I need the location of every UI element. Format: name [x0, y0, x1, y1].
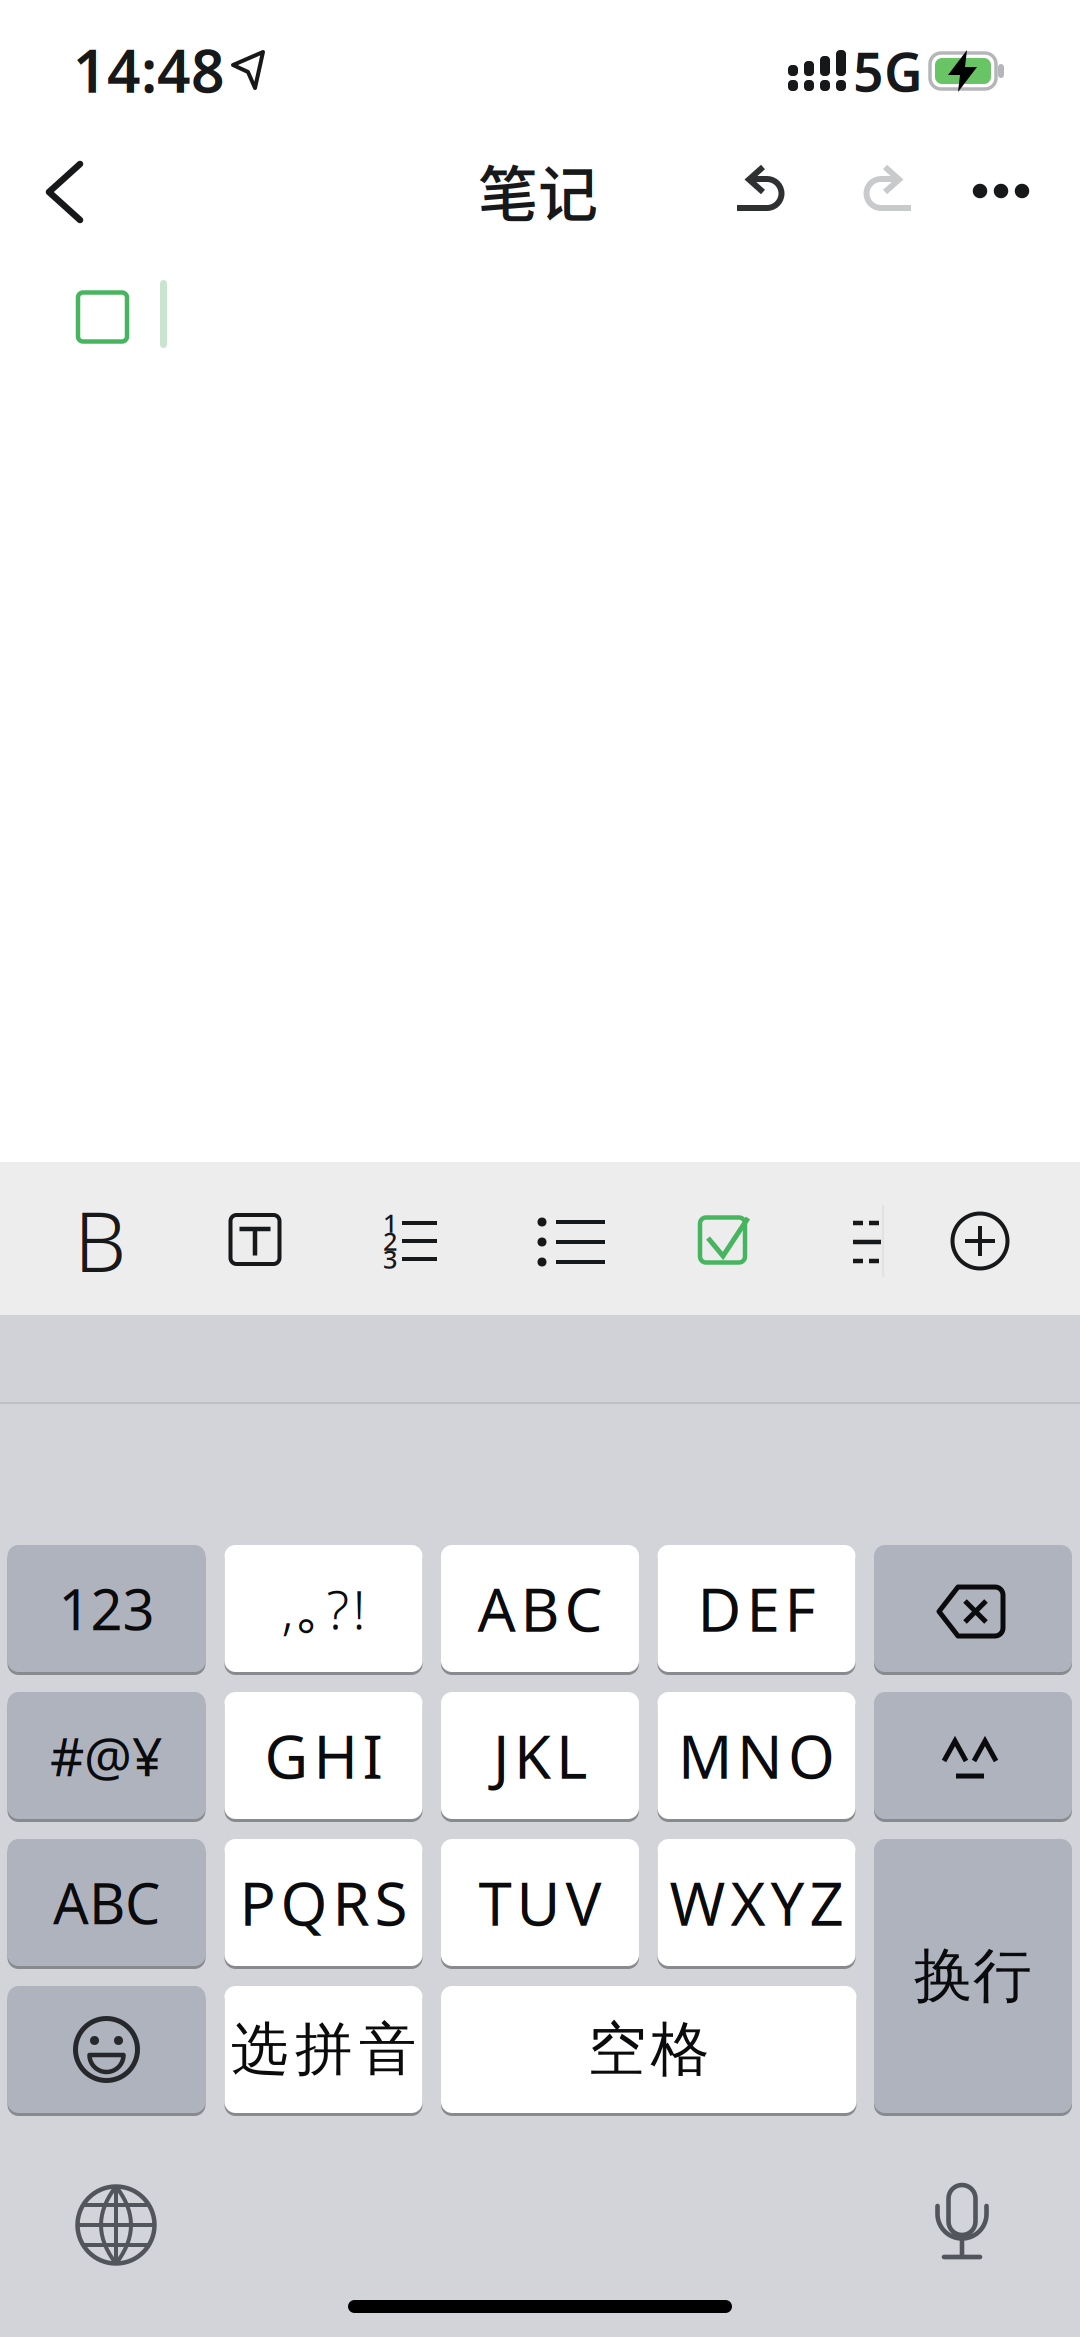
staticText: ABC [53, 1865, 160, 1940]
button[interactable]: 换行 [874, 1839, 1072, 2113]
staticText: MNO [678, 1716, 835, 1795]
staticText: #@¥ [50, 1720, 163, 1791]
button[interactable]: Text style [220, 1184, 290, 1294]
button[interactable]: JKL [441, 1692, 639, 1819]
staticText: 2 [383, 1224, 397, 1258]
staticText: PQRS [239, 1863, 407, 1942]
button[interactable]: Insert [945, 1186, 1015, 1296]
button[interactable]: ABC [441, 1545, 639, 1672]
staticText: WXYZ [669, 1863, 843, 1942]
button[interactable]: Numbered list [366, 1186, 456, 1296]
button[interactable]: Emoji [7, 1986, 205, 2113]
staticText: 123 [58, 1571, 154, 1646]
staticText: 笔记 [478, 147, 598, 233]
button[interactable]: MNO [657, 1692, 855, 1819]
button[interactable]: Divider [836, 1187, 896, 1297]
staticText: 空格 [588, 2013, 710, 2086]
staticText: 选拼音 [231, 2014, 416, 2085]
button[interactable]: ,｡?! [224, 1545, 422, 1672]
button[interactable]: #@¥ [7, 1692, 205, 1819]
button[interactable]: Dictate [912, 2157, 1012, 2287]
button[interactable]: DEF [657, 1545, 855, 1672]
button[interactable]: Tone separator [874, 1692, 1072, 1819]
button[interactable]: Bold [55, 1185, 145, 1295]
staticText: 换行 [914, 1940, 1032, 2012]
staticText: ,｡?! [281, 1573, 365, 1644]
staticText: DEF [697, 1569, 815, 1648]
button[interactable]: Delete [874, 1545, 1072, 1672]
button[interactable]: PQRS [224, 1839, 422, 1966]
staticText: ABC [477, 1569, 602, 1648]
button[interactable]: Redo [848, 147, 928, 227]
staticText: 3 [383, 1242, 397, 1276]
button[interactable]: Back [27, 147, 103, 237]
button[interactable]: 选拼音 [224, 1986, 422, 2113]
staticText: 5G [853, 36, 923, 106]
staticText: TUV [478, 1863, 601, 1942]
button[interactable]: More [956, 156, 1046, 226]
staticText: 1 [383, 1206, 397, 1240]
button[interactable]: ABC [7, 1839, 205, 1966]
button[interactable]: 空格 [441, 1986, 856, 2113]
button[interactable]: Undo [720, 147, 800, 227]
button[interactable]: Checklist [687, 1185, 757, 1295]
staticText: JKL [493, 1716, 587, 1795]
staticText: GHI [264, 1716, 382, 1795]
button[interactable]: 123 [7, 1545, 205, 1672]
staticText: 14:48 [73, 31, 225, 109]
button[interactable]: TUV [441, 1839, 639, 1966]
staticText: B [74, 1185, 126, 1295]
button[interactable]: Bulleted list [526, 1187, 616, 1297]
button[interactable]: WXYZ [657, 1839, 855, 1966]
button[interactable]: GHI [224, 1692, 422, 1819]
button[interactable]: Next keyboard [66, 2175, 166, 2275]
